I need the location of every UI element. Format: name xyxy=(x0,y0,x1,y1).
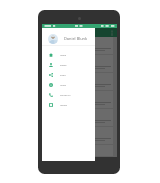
button[interactable] xyxy=(45,145,113,156)
button[interactable]: About xyxy=(42,80,95,90)
button[interactable] xyxy=(45,91,113,108)
button[interactable]: Contact us xyxy=(42,90,95,100)
button[interactable]: Home xyxy=(42,50,95,60)
staticText: Contact us xyxy=(60,94,71,97)
button[interactable]: Daniel Blunk xyxy=(42,28,95,46)
button[interactable]: Share xyxy=(42,70,95,80)
button[interactable]: Profile xyxy=(42,60,95,70)
button[interactable] xyxy=(45,109,113,126)
staticText: Share xyxy=(60,74,66,77)
staticText: Daniel Blunk xyxy=(64,36,88,41)
staticText: Profile xyxy=(60,64,67,67)
button[interactable] xyxy=(45,55,113,72)
staticText: About xyxy=(60,84,66,87)
button[interactable] xyxy=(45,73,113,90)
button[interactable] xyxy=(45,37,113,54)
button[interactable]: More options xyxy=(111,30,113,36)
staticText: Logout xyxy=(60,104,67,107)
staticText: Home xyxy=(60,54,66,57)
button[interactable]: Logout xyxy=(42,100,95,110)
button[interactable] xyxy=(45,127,113,144)
